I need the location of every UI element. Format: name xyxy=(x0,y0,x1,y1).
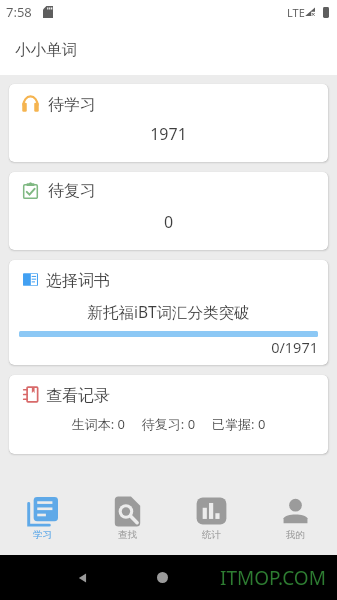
button[interactable]: 待学习 xyxy=(9,84,328,162)
staticText: 0 xyxy=(9,211,328,233)
staticText: 我的 xyxy=(286,529,305,541)
button[interactable]: 选择词书 xyxy=(9,260,328,365)
button[interactable]: Back xyxy=(76,571,90,585)
staticText: LTE xyxy=(287,5,305,20)
button[interactable]: Home xyxy=(157,572,168,583)
staticText: 待学习 xyxy=(48,95,96,115)
staticText: 0/1971 xyxy=(9,337,318,357)
staticText: 学习 xyxy=(33,529,52,541)
staticText: 查看记录 xyxy=(46,386,110,406)
button[interactable]: 学习 xyxy=(0,475,85,555)
button[interactable]: 待复习 xyxy=(9,172,328,250)
staticText: ITMOP.COM xyxy=(220,565,326,591)
button[interactable]: 查找 xyxy=(85,475,169,555)
staticText: 统计 xyxy=(202,529,221,541)
staticText: 查找 xyxy=(118,529,137,541)
button[interactable]: 统计 xyxy=(169,475,253,555)
staticText: 小小单词 xyxy=(15,40,77,60)
staticText: 待复习 xyxy=(48,181,96,201)
staticText: 选择词书 xyxy=(46,271,110,291)
staticText: 1971 xyxy=(9,123,328,145)
staticText: 新托福iBT词汇分类突破 xyxy=(9,301,328,322)
button[interactable]: 我的 xyxy=(253,475,337,555)
staticText: 7:58 xyxy=(6,3,32,21)
button[interactable]: 查看记录 xyxy=(9,375,328,454)
staticText: 生词本: 0 待复习: 0 已掌握: 0 xyxy=(9,415,328,433)
